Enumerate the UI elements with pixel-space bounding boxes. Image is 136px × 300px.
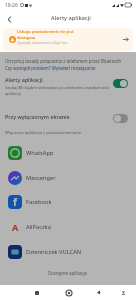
staticText: 19:26 xyxy=(5,2,18,9)
button[interactable]: Messenger xyxy=(0,165,136,190)
button[interactable]: A xyxy=(0,214,136,239)
button[interactable]: Dzienniczek VULCAN xyxy=(0,239,136,264)
button[interactable]: Switch off xyxy=(113,114,128,123)
staticText: Sprawdź uprawnienia Zipp Lite xyxy=(17,40,68,45)
button[interactable]: Usługa powiadomień nie jest dostępna xyxy=(3,28,133,51)
staticText: Alerty aplikacji xyxy=(5,76,43,83)
staticText: Alerty aplikacji xyxy=(51,14,91,22)
staticText: Usługa powiadomień nie jest dostępna xyxy=(17,29,74,40)
staticText: f xyxy=(13,195,17,209)
staticText: Utrzymuj zasady połączenia z telefonem p… xyxy=(5,58,122,64)
staticText: Dzienniczek VULCAN xyxy=(26,248,82,256)
staticText: Szukaj Mi będzie wibrować po odebraniu w… xyxy=(5,85,110,96)
staticText: Messenger xyxy=(26,174,56,182)
staticText: A xyxy=(12,221,19,233)
staticText: Przy wyłączonym ekranie xyxy=(5,113,70,120)
button[interactable]: Back xyxy=(91,285,106,300)
button[interactable]: Recent apps xyxy=(29,285,44,300)
button[interactable]: Home xyxy=(61,285,76,300)
staticText: Facebook xyxy=(26,198,52,206)
staticText: AliPaczka xyxy=(26,223,51,231)
button[interactable]: f xyxy=(0,189,136,214)
staticText: Dostępne aplikacje xyxy=(48,270,88,276)
staticText: Włączone aplikacje z powiadomieniami xyxy=(5,130,82,136)
button[interactable]: Back xyxy=(2,12,16,26)
button[interactable]: Switch on xyxy=(113,79,128,88)
button[interactable]: WhatsApp xyxy=(0,140,136,165)
button[interactable]: Czy wystąpił problem? Wyświetl rozwiązan… xyxy=(5,65,96,71)
button[interactable]: Hide keyboard xyxy=(116,285,131,300)
staticText: WhatsApp xyxy=(26,149,54,157)
